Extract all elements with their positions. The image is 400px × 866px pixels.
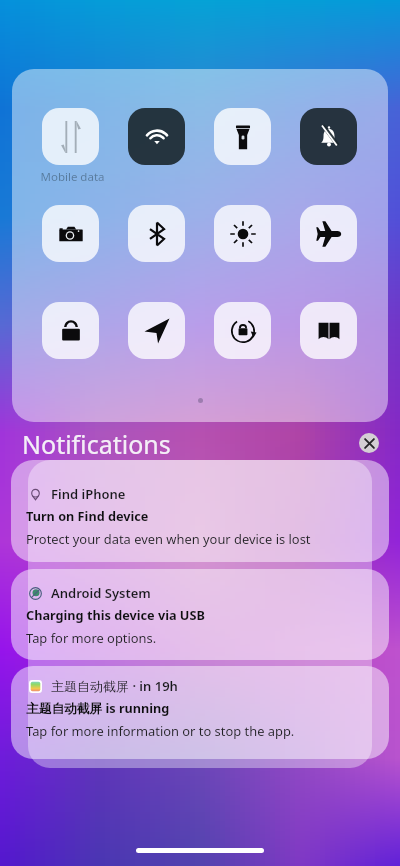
staticText: 主题自动截屏 is running (26, 699, 170, 716)
staticText: Mobile data (22, 169, 123, 185)
staticText: Notifications (22, 427, 171, 461)
button[interactable]: Do not disturb (300, 108, 357, 165)
staticText: Charging this device via USB (26, 606, 205, 623)
button[interactable]: 主题自动截屏 · in 19h (11, 666, 389, 759)
button[interactable]: Flashlight (214, 108, 271, 165)
button[interactable]: Brightness (214, 205, 271, 262)
button[interactable]: Auto rotate (214, 302, 271, 359)
button[interactable]: Find iPhone (11, 460, 389, 562)
button[interactable]: Close notifications (359, 433, 379, 453)
staticText: Find iPhone (51, 485, 126, 503)
button[interactable]: Screen lock (42, 302, 99, 359)
staticText: Android System (51, 584, 151, 602)
staticText: 主题自动截屏 · in 19h (51, 677, 178, 695)
button[interactable]: Location (128, 302, 185, 359)
button[interactable]: Mobile data (42, 108, 99, 165)
button[interactable]: Android System (11, 569, 389, 660)
staticText: Tap for more information or to stop the … (26, 722, 295, 740)
staticText: Tap for more options. (26, 629, 157, 647)
staticText: Protect your data even when your device … (26, 530, 311, 548)
button[interactable]: Camera (42, 205, 99, 262)
button[interactable]: Reading mode (300, 302, 357, 359)
staticText: Turn on Find device (26, 507, 149, 524)
button[interactable]: Bluetooth (128, 205, 185, 262)
button[interactable]: Airplane mode (300, 205, 357, 262)
button[interactable]: Wi-Fi (128, 108, 185, 165)
